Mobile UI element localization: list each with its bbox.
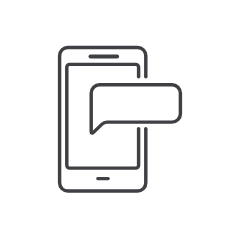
button[interactable]: Mobile messaging xyxy=(0,0,240,240)
